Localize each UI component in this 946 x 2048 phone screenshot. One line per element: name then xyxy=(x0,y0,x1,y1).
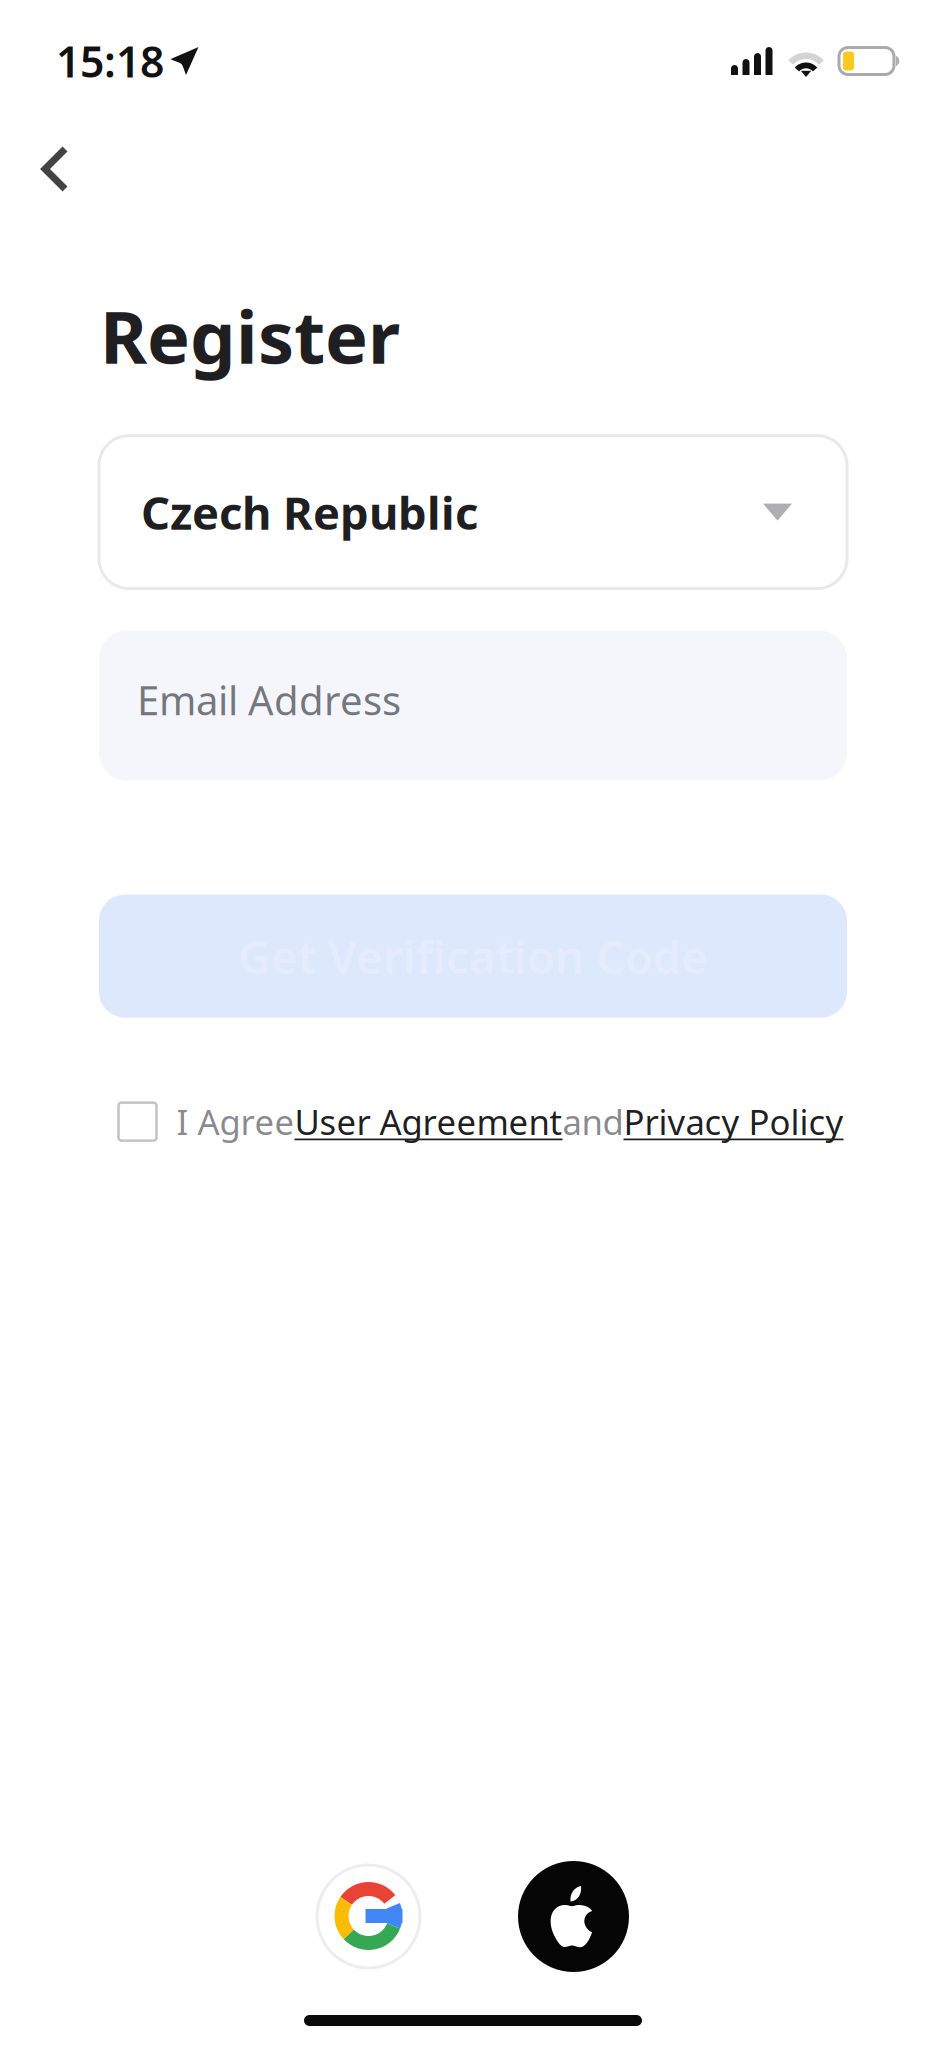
button[interactable]: User Agreement xyxy=(294,1099,562,1145)
button[interactable]: Agree to the terms xyxy=(118,1103,156,1141)
button[interactable]: Privacy Policy xyxy=(623,1099,843,1145)
staticText: I Agree xyxy=(176,1099,294,1145)
staticText: Register xyxy=(100,288,400,384)
button[interactable]: Sign in with Apple xyxy=(518,1861,629,1972)
staticText: Privacy Policy xyxy=(623,1099,843,1145)
staticText: User Agreement xyxy=(294,1099,562,1145)
button[interactable]: Back xyxy=(0,91,100,216)
staticText: Email Address xyxy=(137,673,401,726)
button[interactable]: Get Verification Code xyxy=(99,895,847,1018)
staticText: 15:18 xyxy=(56,33,164,89)
staticText: and xyxy=(562,1099,623,1145)
button[interactable]: Czech Republic xyxy=(99,436,847,589)
button[interactable]: Sign in with Google xyxy=(317,1865,420,1968)
staticText: Czech Republic xyxy=(141,482,478,542)
